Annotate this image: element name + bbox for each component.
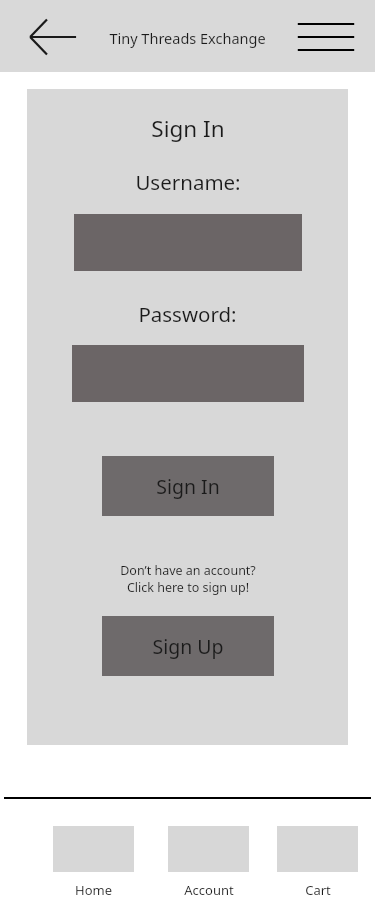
staticText: Tiny Threads Exchange <box>109 28 266 48</box>
staticText: Sign In <box>151 113 225 144</box>
staticText: Sign Up <box>152 633 224 660</box>
staticText: Password: <box>138 300 237 328</box>
button[interactable]: Cart <box>277 826 358 899</box>
button[interactable]: Menu <box>296 19 356 55</box>
staticText: Username: <box>135 168 241 196</box>
button[interactable]: Home <box>53 826 134 899</box>
button[interactable]: Sign Up <box>102 616 274 676</box>
staticText: Account <box>184 881 234 899</box>
button[interactable]: Don’t have an account? Click here to sig… <box>120 562 256 596</box>
button[interactable]: Account <box>168 826 249 899</box>
staticText: Cart <box>305 881 331 899</box>
button[interactable]: Sign In <box>102 456 274 516</box>
staticText: Don’t have an account? Click here to sig… <box>120 562 256 596</box>
staticText: Home <box>75 881 112 899</box>
staticText: Sign In <box>156 473 220 500</box>
button[interactable]: Back <box>24 18 80 56</box>
